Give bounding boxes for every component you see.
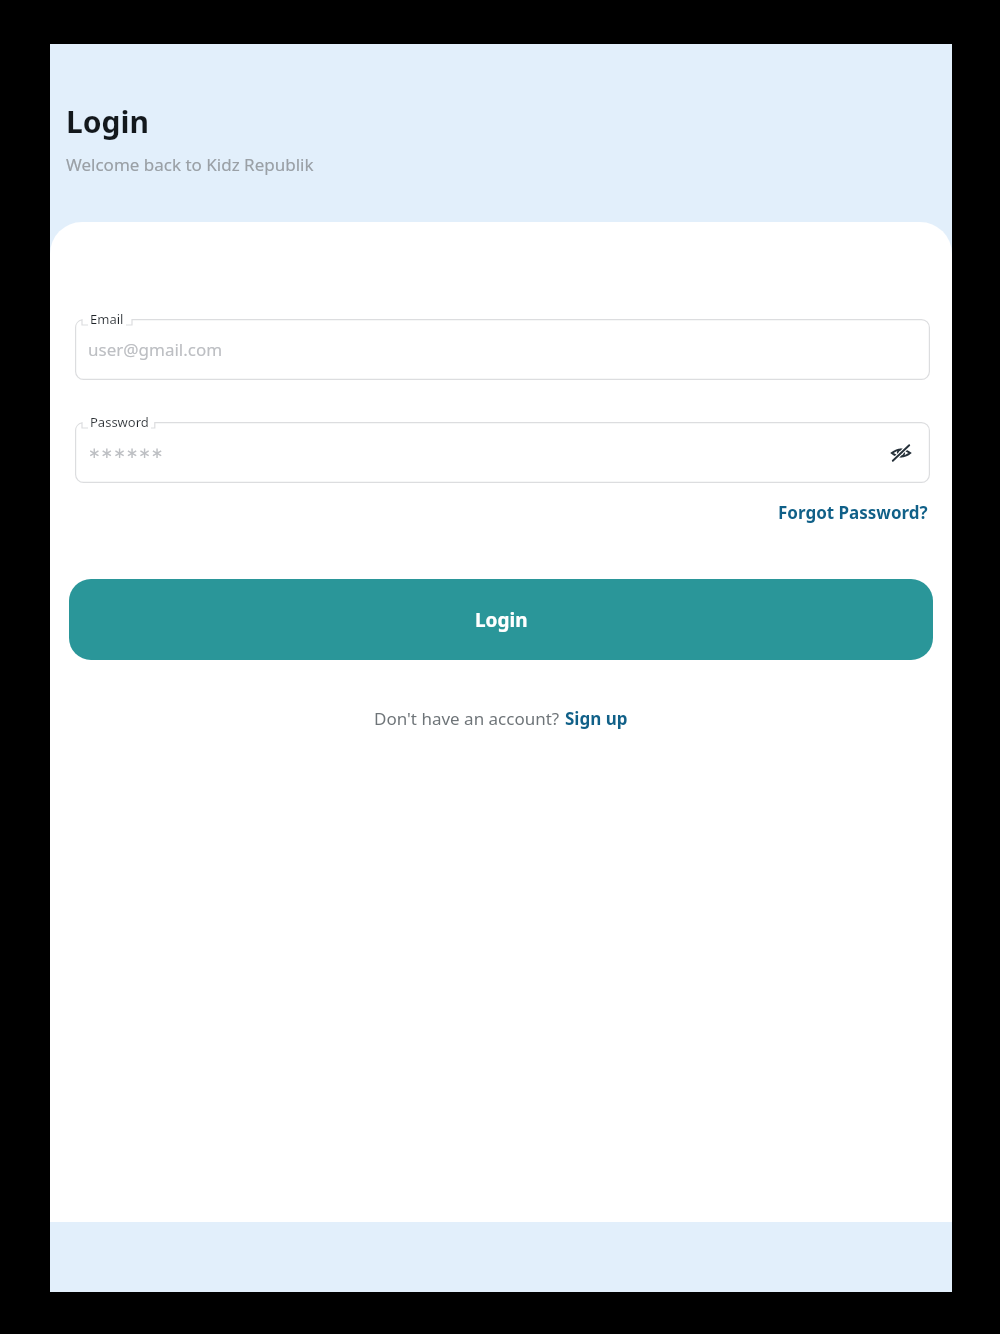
button[interactable]: Login [69,579,933,660]
button[interactable]: Show password [884,436,918,470]
staticText: ∗∗∗∗∗∗ [88,444,164,461]
staticText: Login [66,101,149,142]
staticText: Welcome back to Kidz Republik [66,153,314,176]
button[interactable]: Forgot Password? [776,497,930,528]
button[interactable]: Sign up [564,704,629,733]
staticText: user@gmail.com [88,338,223,361]
button[interactable]: Email [75,319,930,380]
staticText: Don't have an account? [374,707,564,730]
staticText: Forgot Password? [778,501,928,524]
staticText: Sign up [565,707,628,730]
staticText: Login [475,607,528,633]
button[interactable]: Password [75,422,930,483]
staticText: Password [90,413,149,431]
staticText: Email [90,310,124,328]
